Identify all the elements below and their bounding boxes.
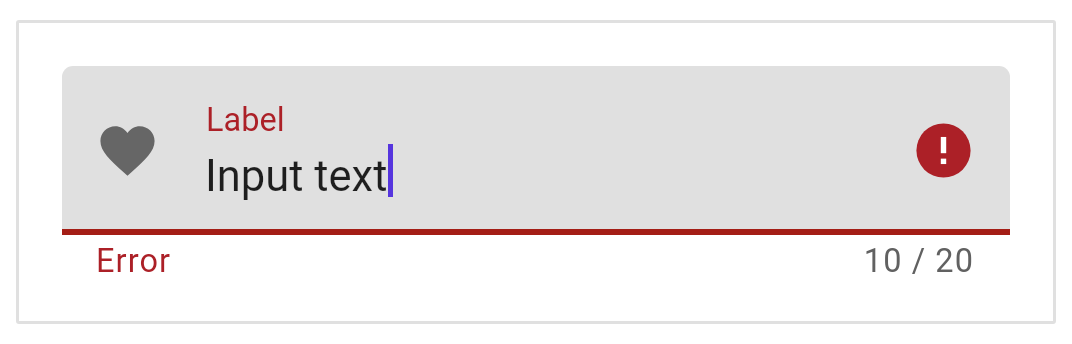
button[interactable]: Favorite xyxy=(95,118,160,183)
staticText: 10 / 20 xyxy=(814,242,974,288)
button[interactable]: Error xyxy=(911,118,976,183)
staticText: Label xyxy=(206,101,285,139)
staticText: Input text xyxy=(205,151,388,202)
staticText: Error xyxy=(96,242,172,280)
button[interactable] xyxy=(62,66,1010,229)
